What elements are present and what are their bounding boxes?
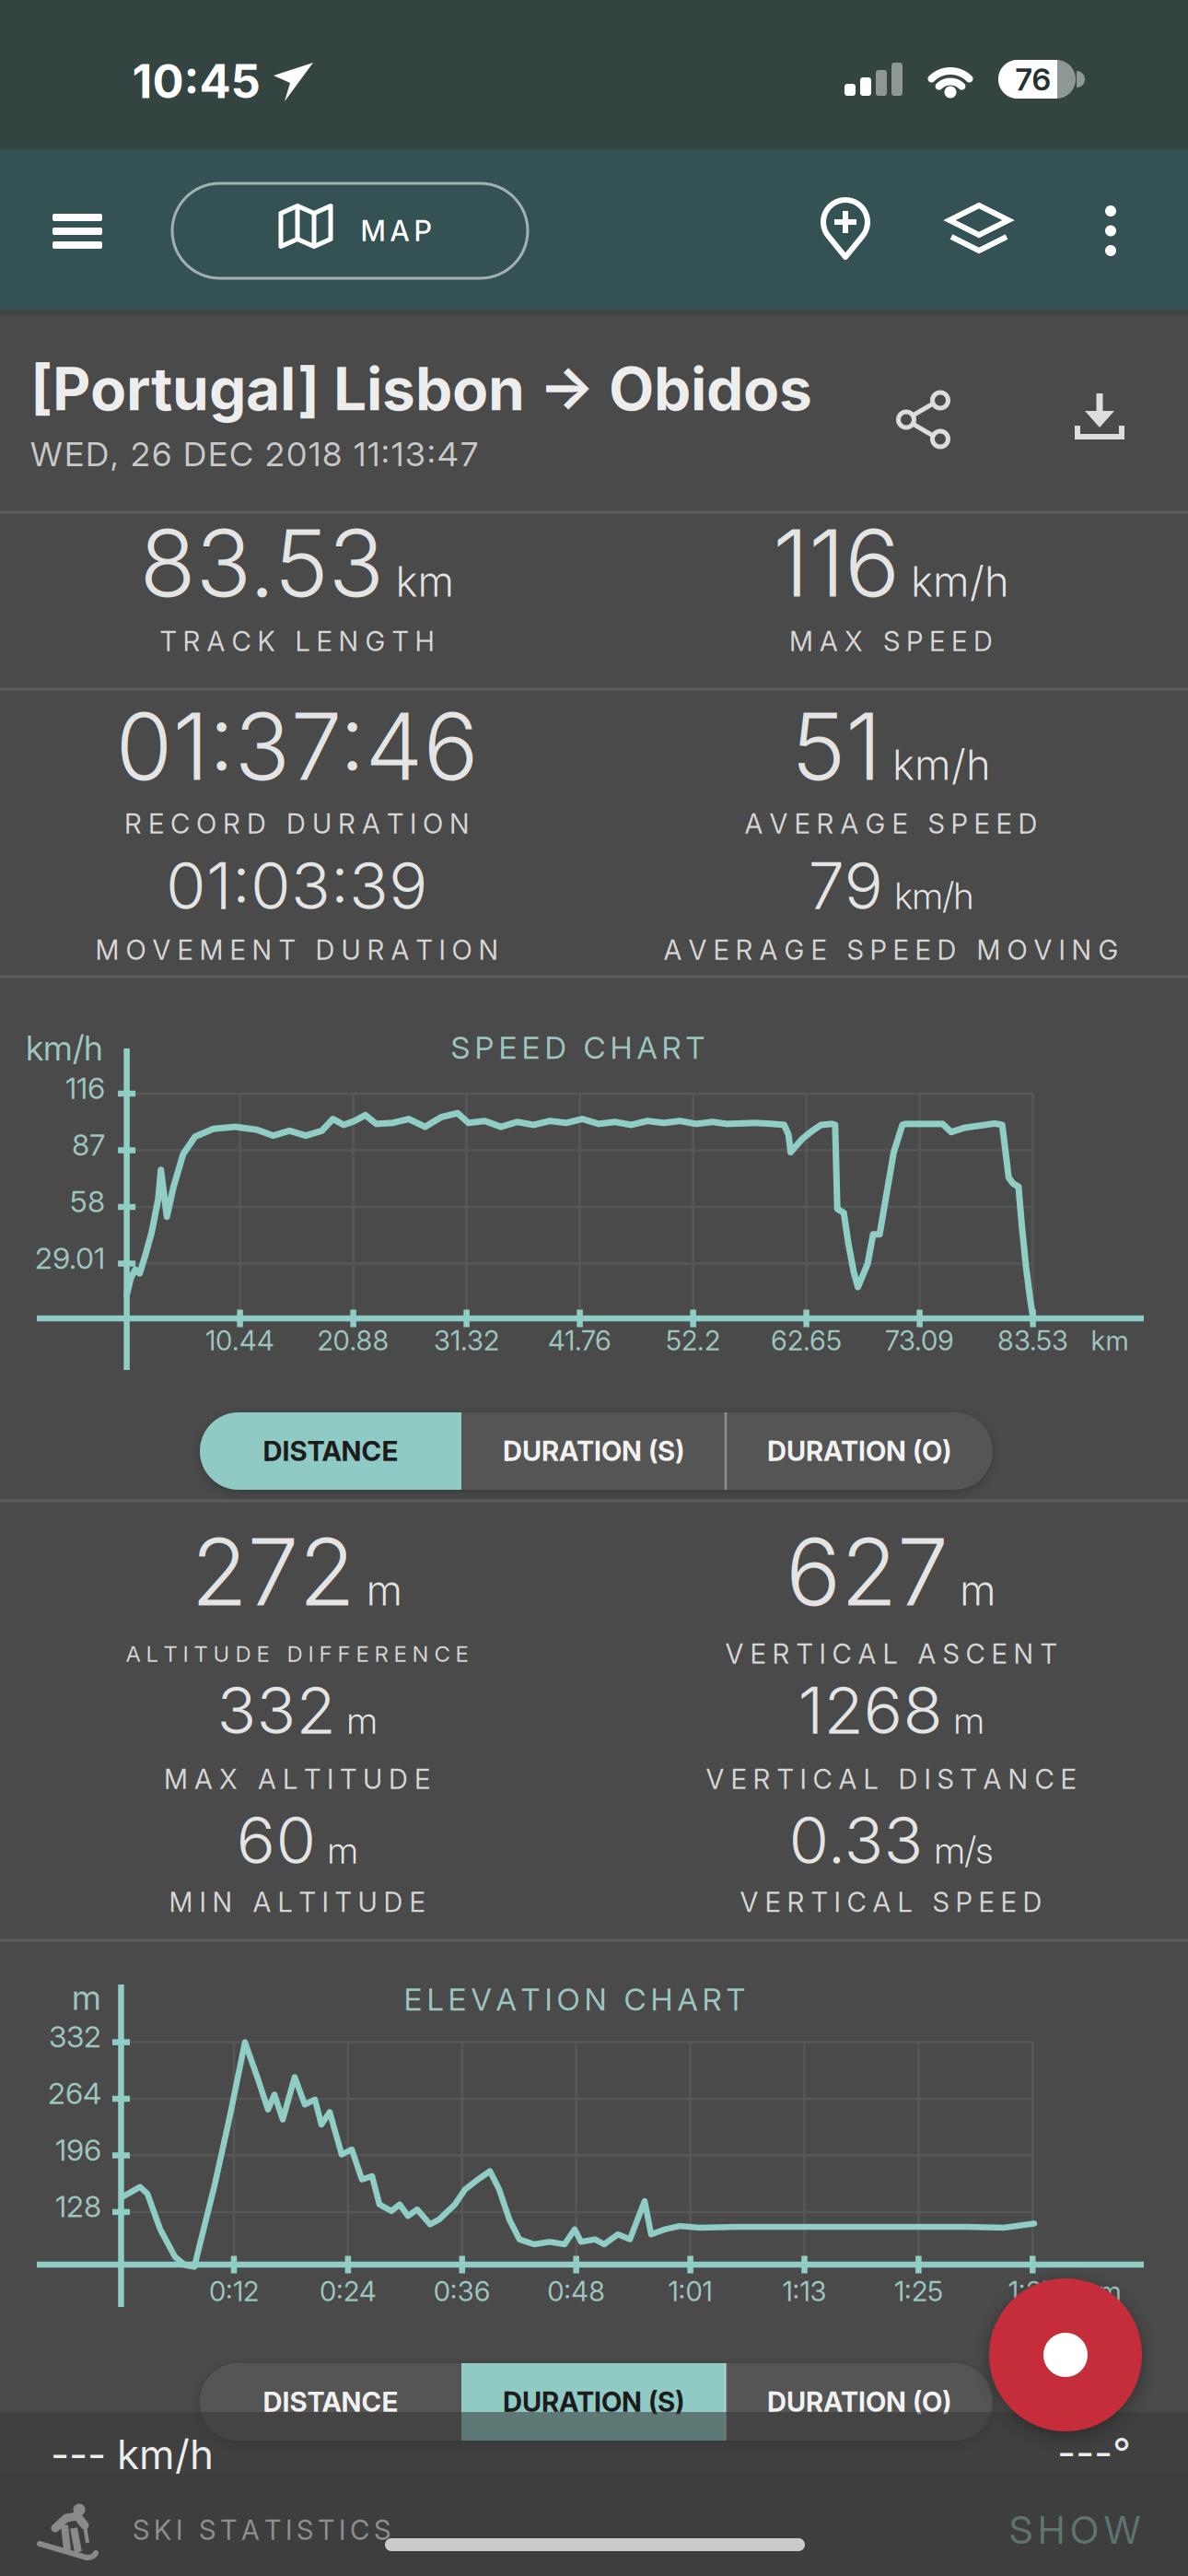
- staticText: 264: [48, 2076, 101, 2111]
- staticText: 0:24: [319, 2275, 377, 2307]
- staticText: 0:36: [434, 2275, 491, 2307]
- staticText: 332: [217, 1672, 336, 1748]
- staticText: A V E R A G E S P E E D: [745, 808, 1037, 840]
- staticText: 31.32: [434, 1325, 499, 1356]
- staticText: 1:37: [1008, 2275, 1057, 2307]
- staticText: 196: [55, 2132, 101, 2167]
- staticText: 0:12: [209, 2275, 259, 2307]
- staticText: km/h: [895, 874, 974, 917]
- staticText: 01:03:39: [166, 847, 428, 924]
- button[interactable]: DURATION (S): [461, 1412, 726, 1490]
- staticText: 60: [236, 1801, 316, 1878]
- staticText: m/s: [934, 1828, 993, 1872]
- staticText: [Portugal] Lisbon → Obidos: [30, 354, 812, 424]
- staticText: DURATION (O): [767, 2386, 951, 2418]
- button[interactable]: Share: [883, 378, 966, 461]
- staticText: DURATION (S): [503, 1435, 684, 1467]
- button[interactable]: Menu: [36, 190, 119, 273]
- staticText: 58: [70, 1184, 105, 1219]
- staticText: E L E V A T I O N C H A R T: [404, 1981, 745, 2017]
- button[interactable]: DISTANCE: [200, 2363, 461, 2441]
- staticText: m: [72, 1977, 101, 2018]
- staticText: 10:45: [132, 54, 260, 109]
- staticText: km/h: [892, 740, 991, 789]
- button[interactable]: Save: [1061, 378, 1144, 461]
- staticText: 83.53: [997, 1325, 1068, 1356]
- staticText: 41.76: [548, 1325, 612, 1356]
- button[interactable]: DURATION (O): [726, 1412, 993, 1490]
- staticText: M A X S P E E D: [789, 625, 993, 657]
- staticText: R E C O R D D U R A T I O N: [124, 808, 470, 840]
- staticText: 116: [65, 1071, 105, 1105]
- staticText: 79: [808, 847, 884, 924]
- button[interactable]: Record: [989, 2278, 1142, 2431]
- staticText: 1:01: [668, 2275, 712, 2307]
- staticText: 332: [49, 2019, 101, 2054]
- staticText: 20.88: [317, 1325, 389, 1356]
- staticText: V E R T I C A L D I S T A N C E: [706, 1763, 1076, 1795]
- staticText: V E R T I C A L A S C E N T: [725, 1638, 1057, 1670]
- staticText: 272: [191, 1517, 355, 1626]
- staticText: m: [347, 1699, 377, 1742]
- staticText: km: [396, 557, 454, 606]
- staticText: DISTANCE: [263, 2386, 398, 2418]
- staticText: 1268: [798, 1672, 943, 1748]
- staticText: DURATION (O): [767, 1435, 951, 1467]
- staticText: W E D , 2 6 D E C 2 0 1 8 1 1 : 1 3 : 4 …: [30, 435, 478, 474]
- staticText: 0.33: [789, 1801, 923, 1878]
- staticText: S P E E D C H A R T: [451, 1029, 705, 1066]
- staticText: 29.01: [35, 1241, 105, 1275]
- staticText: DISTANCE: [263, 1435, 398, 1467]
- staticText: S H O W: [1009, 2507, 1140, 2552]
- staticText: V E R T I C A L S P E E D: [740, 1886, 1042, 1918]
- staticText: M I N A L T I T U D E: [169, 1886, 425, 1918]
- button[interactable]: DURATION (O): [726, 2363, 993, 2441]
- button[interactable]: S H O W: [973, 2488, 1176, 2571]
- button[interactable]: DISTANCE: [200, 1412, 461, 1490]
- staticText: A V E R A G E S P E E D M O V I N G: [664, 934, 1118, 966]
- staticText: --- km/h: [51, 2430, 214, 2478]
- button[interactable]: Add waypoint: [804, 189, 887, 272]
- staticText: 62.65: [771, 1325, 842, 1356]
- staticText: M A X A L T I T U D E: [164, 1763, 430, 1795]
- staticText: 1:25: [894, 2275, 943, 2307]
- button[interactable]: DURATION (S): [461, 2363, 726, 2441]
- staticText: 128: [55, 2189, 101, 2224]
- staticText: 0:48: [547, 2275, 605, 2307]
- staticText: 83.53: [140, 509, 384, 617]
- button[interactable]: More options: [1078, 189, 1143, 272]
- staticText: 73.09: [885, 1325, 954, 1356]
- staticText: 627: [786, 1517, 949, 1626]
- staticText: 51: [791, 692, 881, 801]
- staticText: km/h: [26, 1028, 103, 1068]
- staticText: km: [1091, 1325, 1129, 1356]
- button[interactable]: Map layers: [938, 189, 1020, 272]
- staticText: S K I S T A T I S T I C S: [133, 2514, 390, 2546]
- staticText: 116: [773, 509, 900, 617]
- staticText: m: [1098, 2275, 1121, 2307]
- staticText: M O V E M E N T D U R A T I O N: [95, 934, 499, 966]
- staticText: 76: [1015, 61, 1051, 97]
- staticText: M A P: [361, 214, 431, 247]
- staticText: m: [327, 1828, 358, 1872]
- staticText: km/h: [911, 557, 1009, 606]
- staticText: 87: [72, 1127, 105, 1162]
- staticText: m: [954, 1699, 984, 1742]
- staticText: m: [366, 1565, 403, 1615]
- staticText: T R A C K L E N G T H: [160, 625, 434, 657]
- button[interactable]: M A P: [172, 183, 528, 278]
- staticText: 01:37:46: [116, 692, 478, 801]
- staticText: 52.2: [666, 1325, 720, 1356]
- staticText: 10.44: [205, 1325, 275, 1356]
- staticText: m: [960, 1565, 996, 1615]
- staticText: DURATION (S): [503, 2386, 684, 2418]
- staticText: ---°: [1057, 2429, 1131, 2476]
- staticText: A L T I T U D E D I F F E R E N C E: [126, 1641, 468, 1667]
- staticText: 1:13: [782, 2275, 827, 2307]
